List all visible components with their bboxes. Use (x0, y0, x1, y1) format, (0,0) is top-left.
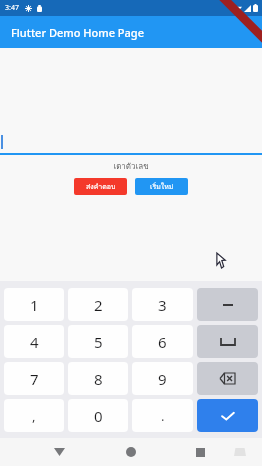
button[interactable]: Space (197, 325, 258, 358)
button[interactable]: Recents (187, 439, 213, 465)
button[interactable]: 4 (4, 325, 64, 358)
staticText: 1 (30, 295, 39, 315)
staticText: เริ่มใหม่ (150, 181, 174, 192)
button[interactable]: 9 (132, 362, 193, 395)
staticText: 5 (94, 332, 103, 352)
button[interactable]: 2 (68, 288, 128, 321)
button[interactable]: 0 (68, 399, 128, 432)
button[interactable]: . (132, 399, 193, 432)
staticText: ส่งคำตอบ (86, 181, 116, 192)
staticText: 7 (30, 369, 39, 389)
button[interactable]: Dash (197, 288, 258, 321)
button[interactable]: เริ่มใหม่ (135, 178, 188, 195)
button[interactable]: 8 (68, 362, 128, 395)
button[interactable]: Enter (197, 399, 258, 432)
staticText: 2 (94, 295, 103, 315)
button[interactable]: Home (118, 439, 144, 465)
button[interactable]: 3 (132, 288, 193, 321)
staticText: 0 (94, 406, 103, 426)
button[interactable]: ส่งคำตอบ (74, 178, 127, 195)
button[interactable]: 6 (132, 325, 193, 358)
staticText: เดาตัวเลข (0, 160, 262, 173)
staticText: , (32, 407, 36, 425)
button[interactable]: Back (46, 439, 72, 465)
button[interactable]: 7 (4, 362, 64, 395)
staticText: 4 (30, 332, 39, 352)
staticText: Flutter Demo Home Page (11, 25, 144, 40)
staticText: . (161, 407, 165, 425)
staticText: 3:47 (5, 3, 19, 13)
staticText: 3 (158, 295, 167, 315)
staticText: 6 (158, 332, 167, 352)
button[interactable]: , (4, 399, 64, 432)
staticText: 9 (158, 369, 167, 389)
staticText: 8 (94, 369, 103, 389)
button[interactable]: 5 (68, 325, 128, 358)
button[interactable]: 1 (4, 288, 64, 321)
button[interactable]: Backspace (197, 362, 258, 395)
button[interactable]: Hide keyboard (228, 440, 252, 464)
